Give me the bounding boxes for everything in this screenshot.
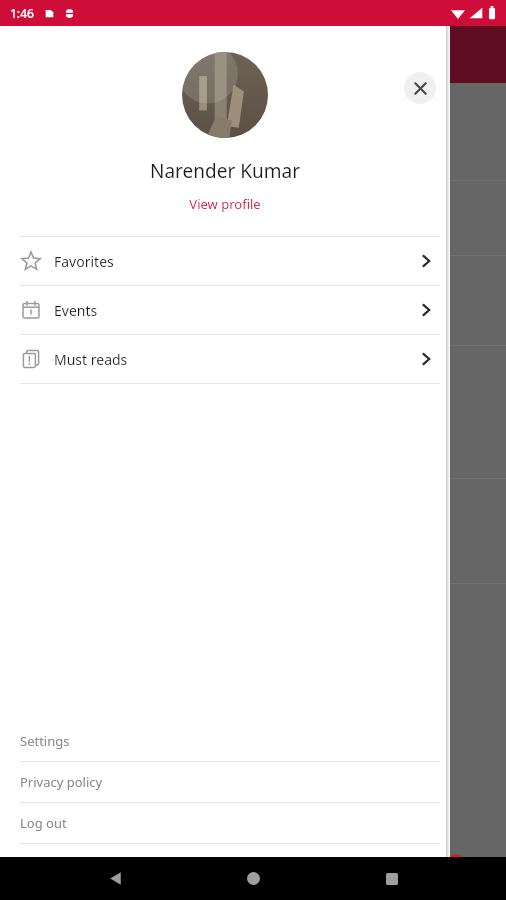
button[interactable]: Profile photo <box>182 52 268 138</box>
button[interactable]: View profile <box>181 193 269 215</box>
staticText: Events <box>54 301 98 320</box>
staticText: View profile <box>189 195 261 213</box>
button[interactable]: Favorites <box>0 237 450 285</box>
button[interactable]: Recent apps <box>368 857 416 900</box>
staticText: 3 <box>453 855 459 869</box>
staticText: Settings <box>20 732 70 750</box>
staticText: Privacy policy <box>20 773 103 791</box>
button[interactable]: Settings <box>0 721 450 761</box>
staticText: Favorites <box>54 252 114 271</box>
button[interactable]: Must reads <box>0 335 450 383</box>
button[interactable]: Events <box>0 286 450 334</box>
button[interactable]: Back <box>91 857 139 900</box>
staticText: 1:46 <box>10 5 34 21</box>
button[interactable]: Privacy policy <box>0 762 450 802</box>
button[interactable]: Close <box>404 72 436 104</box>
button[interactable]: Log out <box>0 803 450 843</box>
staticText: Narender Kumar <box>0 158 450 184</box>
staticText: Log out <box>20 814 67 832</box>
button[interactable]: Home <box>229 857 277 900</box>
staticText: Must reads <box>54 350 128 369</box>
